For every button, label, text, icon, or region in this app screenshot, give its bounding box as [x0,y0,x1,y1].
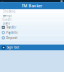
staticText: Sign Out [7,46,19,49]
staticText: Credit [3,18,12,21]
button[interactable]: Checking [0,9,64,13]
staticText: Checking [3,10,16,13]
staticText: TM Banker [21,3,42,8]
staticText: Transfer [6,26,16,29]
button[interactable]: Deposit [0,35,64,40]
staticText: Loans [3,22,10,25]
button[interactable]: Credit [0,18,64,22]
staticText: Deposit [6,36,17,40]
staticText: 9:41 [1,0,4,2]
button[interactable]: Savings [0,14,64,17]
staticText: Pay Bills [6,31,17,34]
button[interactable]: Transfer [0,25,64,30]
button[interactable]: Loans [0,22,64,25]
staticText: Savings [3,14,12,17]
button[interactable]: Pay Bills [0,30,64,35]
button[interactable]: Sign Out [0,44,64,50]
